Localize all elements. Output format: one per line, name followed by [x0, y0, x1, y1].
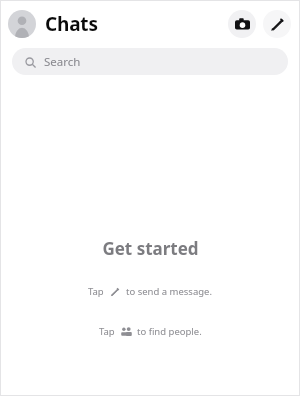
button[interactable]: New message	[263, 10, 291, 38]
button[interactable]: Search	[12, 48, 288, 75]
staticText: Search	[44, 54, 81, 70]
staticText: Tap	[88, 285, 104, 298]
staticText: Tap	[99, 325, 115, 338]
staticText: to find people.	[137, 325, 202, 338]
button[interactable]: Camera	[228, 10, 256, 38]
button[interactable]: Profile	[8, 10, 36, 38]
staticText: to send a message.	[126, 285, 212, 298]
staticText: Get started	[102, 237, 199, 260]
staticText: Chats	[45, 11, 98, 37]
